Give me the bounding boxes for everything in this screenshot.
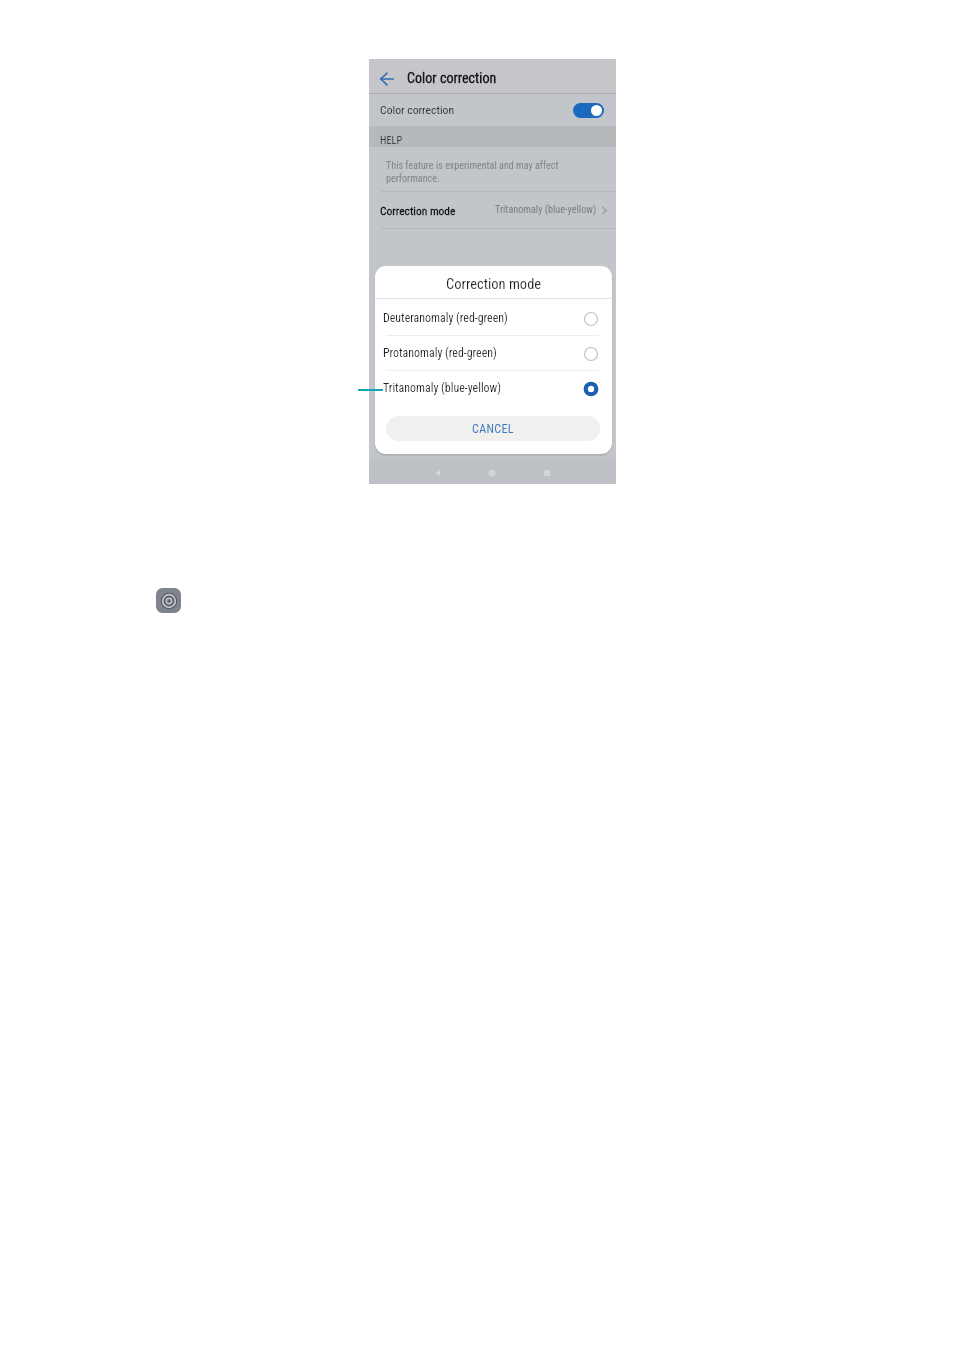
button[interactable]: Home: [484, 465, 499, 480]
staticText: CANCEL: [472, 422, 514, 436]
staticText: Correction mode: [380, 204, 456, 217]
button[interactable]: Color correction: [369, 94, 616, 126]
button[interactable]: Color correction toggle: [573, 103, 604, 118]
button[interactable]: Tritanomaly (blue-yellow): [375, 371, 612, 406]
staticText: Deuteranomaly (red-green): [383, 311, 508, 325]
button[interactable]: CANCEL: [386, 416, 600, 441]
staticText: This feature is experimental and may aff…: [386, 160, 559, 185]
button[interactable]: Recents: [539, 465, 554, 480]
button[interactable]: Deuteranomaly (red-green): [375, 301, 612, 336]
staticText: Tritanomaly (blue-yellow): [383, 381, 502, 395]
staticText: Color correction: [407, 70, 497, 87]
button[interactable]: Protanomaly (red-green): [375, 336, 612, 371]
button[interactable]: Back: [430, 465, 445, 480]
staticText: Color correction: [380, 103, 455, 117]
staticText: HELP: [380, 134, 403, 146]
staticText: Protanomaly (red-green): [383, 346, 497, 360]
button[interactable]: Correction mode: [369, 192, 616, 228]
staticText: Correction mode: [446, 276, 542, 293]
button[interactable]: Accessibility shortcut: [156, 588, 181, 613]
button[interactable]: Back: [377, 69, 397, 89]
staticText: Tritanomaly (blue-yellow): [495, 204, 597, 216]
